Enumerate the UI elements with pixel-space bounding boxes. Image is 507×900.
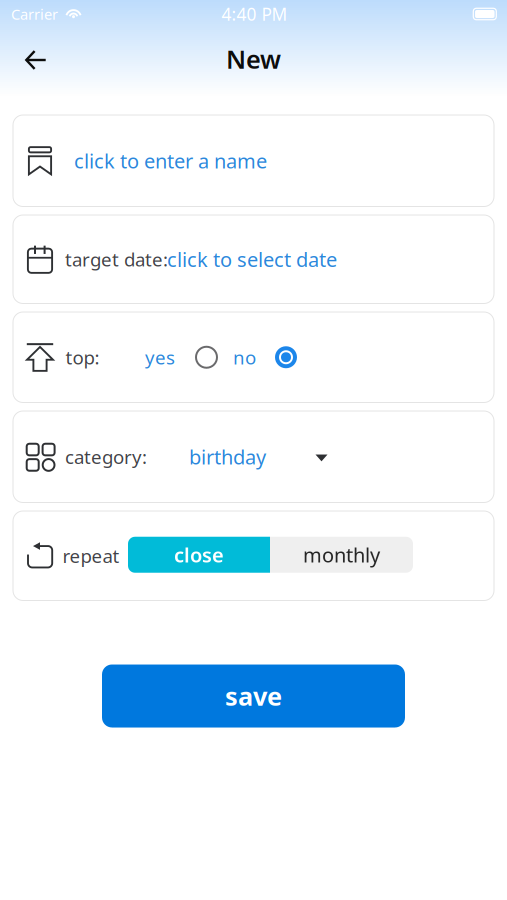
staticText: birthday xyxy=(189,443,266,470)
button[interactable]: save xyxy=(102,664,405,727)
staticText: category: xyxy=(65,444,147,469)
staticText: click to enter a name xyxy=(74,147,267,174)
staticText: 4:40 PM xyxy=(221,2,287,25)
staticText: target date: xyxy=(65,247,168,272)
staticText: click to select date xyxy=(167,246,337,273)
button[interactable]: click to enter a name xyxy=(13,115,494,206)
staticText: save xyxy=(225,679,282,713)
staticText: yes xyxy=(145,345,175,370)
staticText: New xyxy=(226,42,281,76)
button[interactable]: monthly xyxy=(270,537,413,573)
staticText: no xyxy=(233,345,256,370)
button[interactable]: target date: xyxy=(13,215,494,303)
button[interactable]: close xyxy=(128,537,270,573)
staticText: monthly xyxy=(303,541,380,568)
button[interactable]: no xyxy=(233,345,297,370)
button[interactable]: category: xyxy=(13,411,494,502)
button[interactable]: Back xyxy=(13,38,59,82)
staticText: close xyxy=(174,541,224,568)
button[interactable]: yes xyxy=(145,345,217,370)
staticText: top: xyxy=(65,345,99,370)
staticText: repeat xyxy=(62,543,119,568)
staticText: Carrier xyxy=(11,4,58,24)
